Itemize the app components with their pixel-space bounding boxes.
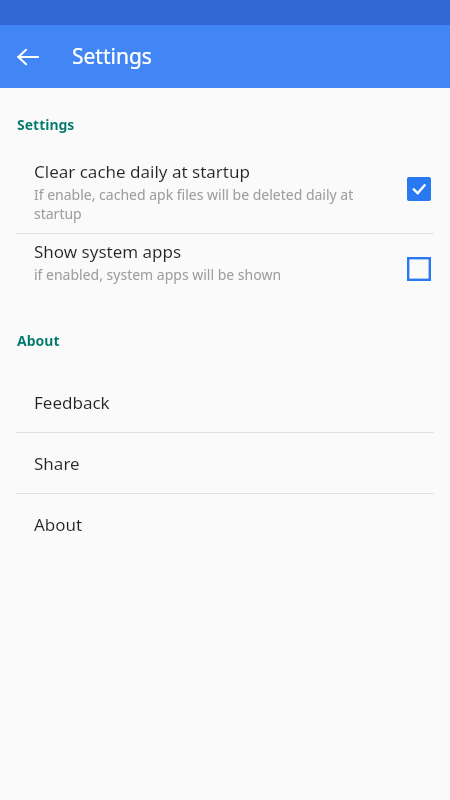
button[interactable]: Share — [0, 433, 450, 493]
staticText: About — [34, 513, 83, 536]
button[interactable]: Feedback — [0, 372, 450, 432]
staticText: Share — [34, 452, 80, 475]
staticText: Feedback — [34, 391, 110, 414]
staticText: About — [17, 331, 60, 350]
staticText: Clear cache daily at startup — [34, 160, 250, 183]
staticText: Show system apps — [34, 240, 182, 263]
staticText: Settings — [17, 115, 75, 134]
button[interactable]: Show system apps — [0, 234, 450, 294]
staticText: Settings — [72, 42, 152, 71]
button[interactable]: Back — [10, 39, 46, 75]
button[interactable]: Clear cache daily at startup — [0, 154, 450, 233]
button[interactable]: Unchecked — [404, 254, 434, 284]
staticText: If enable, cached apk files will be dele… — [34, 185, 386, 223]
button[interactable]: About — [0, 494, 450, 554]
button[interactable]: Checked — [404, 174, 434, 204]
staticText: if enabled, system apps will be shown — [34, 265, 282, 284]
